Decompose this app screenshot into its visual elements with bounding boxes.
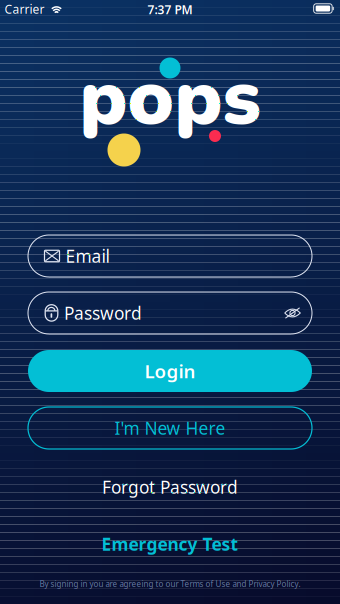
staticText: Emergency Test xyxy=(101,532,238,555)
staticText: Forgot Password xyxy=(102,475,238,498)
button[interactable]: Emergency Test xyxy=(70,529,270,559)
button[interactable]: Password xyxy=(28,292,312,334)
staticText: Email xyxy=(65,244,109,267)
staticText: pops xyxy=(79,45,260,151)
staticText: Carrier xyxy=(4,1,44,17)
button[interactable]: Email xyxy=(28,235,312,277)
button[interactable]: Login xyxy=(28,350,312,392)
button[interactable]: Forgot Password xyxy=(70,472,270,502)
staticText: 7:37 PM xyxy=(147,1,192,17)
staticText: I'm New Here xyxy=(114,416,225,439)
staticText: By signing in you are agreeing to our Te… xyxy=(39,579,300,589)
staticText: Login xyxy=(144,359,195,383)
staticText: Password xyxy=(64,301,142,324)
button[interactable]: I'm New Here xyxy=(28,407,312,449)
